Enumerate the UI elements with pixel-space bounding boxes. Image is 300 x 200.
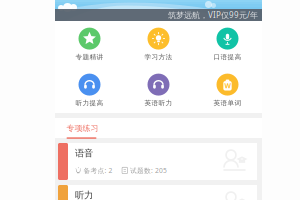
staticText: 学习方法: [144, 53, 172, 61]
button[interactable]: 专项练习: [66, 123, 98, 139]
button[interactable]: W: [193, 67, 262, 113]
staticText: 试题数: 205: [130, 166, 167, 175]
staticText: 备考点: 2: [83, 166, 112, 175]
button[interactable]: 专题精讲: [55, 21, 124, 67]
staticText: 听力提高: [75, 99, 103, 107]
button[interactable]: 听力提高: [55, 67, 124, 113]
staticText: 语音: [75, 147, 93, 159]
staticText: 听力: [75, 189, 93, 200]
button[interactable]: 听力: [58, 185, 257, 200]
staticText: 专题精讲: [75, 53, 103, 61]
staticText: 英语单词: [213, 99, 241, 107]
button[interactable]: 语音: [58, 143, 257, 180]
button[interactable]: 英语听力: [124, 67, 193, 113]
staticText: 专项练习: [66, 123, 98, 133]
staticText: W: [224, 81, 230, 90]
staticText: 筑梦远航，VIP仅99元/年: [168, 10, 258, 20]
staticText: 英语听力: [144, 99, 172, 107]
staticText: 口语提高: [213, 53, 241, 61]
button[interactable]: 口语提高: [193, 21, 262, 67]
button[interactable]: 学习方法: [124, 21, 193, 67]
